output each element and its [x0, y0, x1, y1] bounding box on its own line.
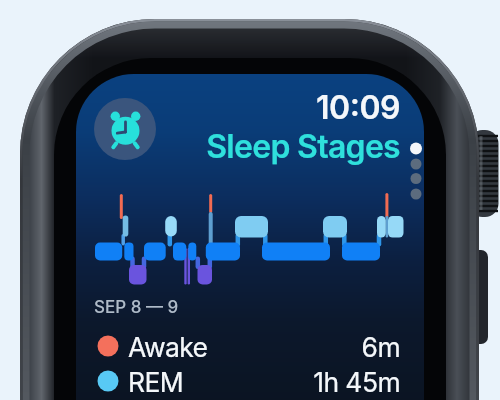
staticText: 10:09	[150, 88, 400, 127]
staticText: 6m	[150, 331, 400, 363]
staticText: Awake	[128, 331, 208, 363]
staticText: REM	[128, 366, 184, 398]
button[interactable]	[94, 98, 156, 160]
staticText: SEP 8 — 9	[94, 297, 179, 318]
staticText: Sleep Stages	[150, 127, 400, 166]
staticText: 1h 45m	[150, 366, 400, 398]
